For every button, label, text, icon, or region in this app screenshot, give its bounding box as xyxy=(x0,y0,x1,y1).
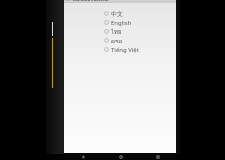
button[interactable]: Home xyxy=(102,153,139,160)
button[interactable]: ລາວ xyxy=(64,36,176,45)
button[interactable]: English xyxy=(64,18,176,27)
button[interactable]: ไทย xyxy=(64,27,176,36)
button[interactable]: Tiếng Việt xyxy=(64,45,176,54)
staticText: Ina Data Collector xyxy=(73,0,110,2)
button[interactable]: 中文 xyxy=(64,9,176,18)
button[interactable]: Ina Data Collector xyxy=(64,0,176,3)
button[interactable]: Back xyxy=(64,153,102,160)
staticText: ລາວ xyxy=(111,37,122,44)
button[interactable]: Recent apps xyxy=(139,153,176,160)
staticText: English xyxy=(111,19,132,27)
staticText: 中文 xyxy=(111,10,123,18)
staticText: Tiếng Việt xyxy=(111,46,139,54)
staticText: ไทย xyxy=(111,27,122,36)
